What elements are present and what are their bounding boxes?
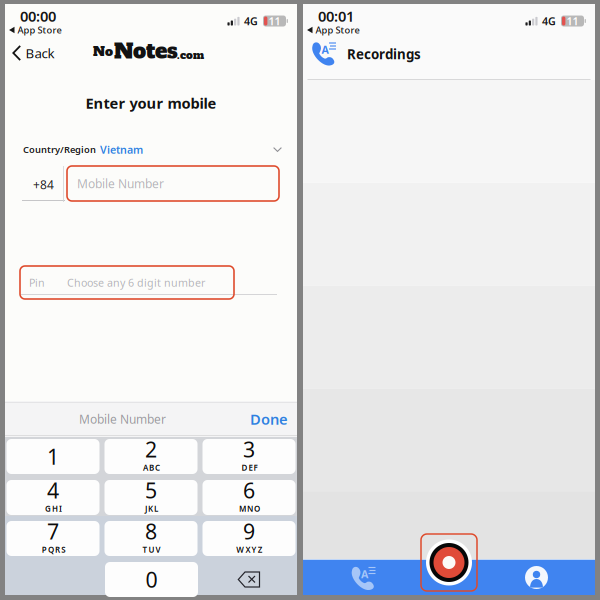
staticText: 7	[47, 517, 59, 545]
staticText: ABC	[143, 462, 160, 473]
staticText: Mobile Number	[79, 411, 166, 427]
staticText: Country/Region	[23, 143, 96, 156]
button[interactable]: 4	[6, 480, 99, 515]
staticText: 4G	[244, 14, 258, 28]
staticText: .com	[177, 48, 204, 63]
staticText: 11	[268, 14, 280, 28]
staticText: 4	[47, 476, 59, 504]
staticText: Back	[25, 44, 54, 62]
button[interactable]: Done	[240, 403, 297, 435]
staticText: Mobile Number	[77, 175, 164, 191]
staticText: 00:00	[20, 6, 56, 26]
staticText: 2	[145, 435, 157, 463]
button[interactable]: 2	[104, 439, 197, 474]
button[interactable]: 3	[202, 439, 295, 474]
staticText: App Store	[17, 24, 61, 36]
staticText: Done	[250, 409, 288, 429]
staticText: A	[321, 42, 328, 57]
button[interactable]: 8	[104, 521, 197, 556]
button[interactable]: 6	[202, 480, 295, 515]
staticText: Notes	[114, 37, 178, 65]
staticText: Pin	[29, 275, 45, 290]
staticText: App Store	[315, 24, 359, 36]
staticText: MNO	[239, 503, 260, 514]
button[interactable]: 5	[104, 480, 197, 515]
staticText: Choose any 6 digit number	[67, 275, 205, 290]
button[interactable]: 7	[6, 521, 99, 556]
staticText: 3	[243, 435, 255, 463]
staticText: JKL	[145, 503, 158, 514]
button[interactable]: 9	[202, 521, 295, 556]
staticText: 4G	[542, 14, 556, 28]
staticText: DEF	[241, 462, 258, 473]
staticText: 00:01	[318, 6, 354, 26]
button[interactable]: Delete	[203, 562, 295, 596]
staticText: WXYZ	[236, 544, 263, 555]
button[interactable]: Record	[421, 534, 477, 591]
button[interactable]: 0	[105, 562, 198, 597]
staticText: 8	[145, 517, 157, 545]
staticText: A	[361, 567, 368, 581]
staticText: Vietnam	[100, 142, 143, 157]
staticText: 11	[566, 14, 578, 28]
staticText: +84	[33, 176, 54, 192]
staticText: Enter your mobile	[85, 93, 216, 113]
staticText: PQRS	[42, 544, 65, 555]
staticText: Recordings	[347, 45, 421, 63]
button[interactable]: Record	[400, 560, 498, 595]
staticText: 9	[243, 517, 255, 545]
staticText: TUV	[142, 544, 161, 555]
button[interactable]: Recordings	[303, 560, 400, 595]
staticText: 5	[145, 476, 157, 504]
button[interactable]: 1	[6, 439, 99, 474]
staticText: GHI	[45, 503, 62, 514]
staticText: 6	[243, 476, 255, 504]
button[interactable]: Account	[498, 560, 595, 595]
staticText: 0	[145, 565, 157, 594]
staticText: No	[93, 43, 113, 60]
button[interactable]: Back	[5, 39, 62, 67]
staticText: 1	[47, 442, 59, 471]
